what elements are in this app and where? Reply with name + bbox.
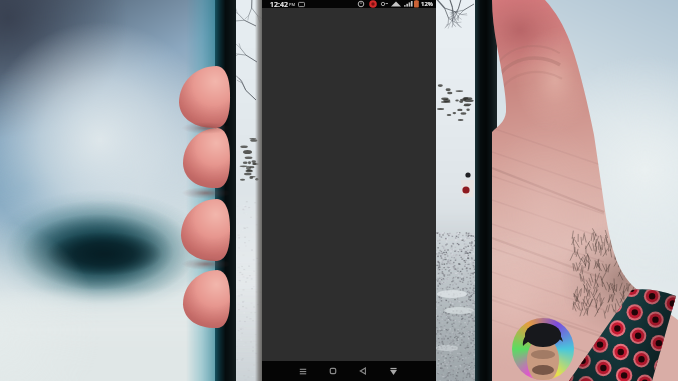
button[interactable]: Recents bbox=[288, 361, 318, 381]
button[interactable]: Back bbox=[348, 361, 378, 381]
staticText: PM bbox=[289, 2, 296, 7]
staticText: 12% bbox=[421, 0, 433, 8]
button[interactable]: Hide navigation bar bbox=[378, 361, 408, 381]
staticText: 12:42 bbox=[270, 0, 288, 8]
button[interactable]: Home bbox=[318, 361, 348, 381]
